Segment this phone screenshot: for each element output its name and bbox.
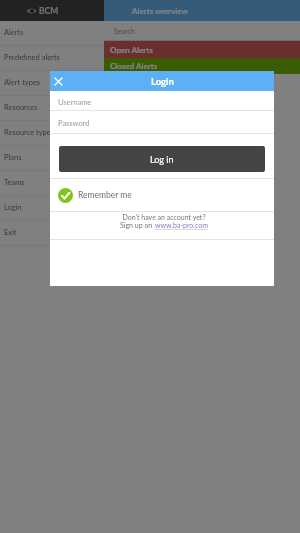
staticText: Resource types — [4, 128, 55, 137]
staticText: Plans — [4, 153, 22, 162]
staticText: Search — [114, 27, 135, 35]
button[interactable]: Exit — [0, 221, 104, 246]
button[interactable]: Resources — [0, 96, 104, 121]
button[interactable]: Login — [0, 196, 104, 221]
button[interactable]: Remember me — [50, 179, 274, 211]
button[interactable]: Open Alerts — [104, 41, 300, 58]
staticText: Alerts — [4, 28, 24, 37]
button[interactable]: Plans — [0, 146, 104, 171]
button[interactable]: Alert types — [0, 71, 104, 96]
staticText: Log in — [150, 154, 174, 165]
button[interactable]: Alerts — [0, 21, 104, 46]
button[interactable]: Resource types — [0, 121, 104, 146]
staticText: Alerts overview — [132, 6, 188, 16]
button[interactable]: Password — [58, 114, 274, 133]
staticText: Don't have an account yet? — [122, 213, 206, 221]
staticText: Remember me — [78, 190, 132, 200]
staticText: Username — [58, 98, 92, 107]
button[interactable]: www.ba-pro.com — [155, 221, 208, 229]
staticText: Sign up on — [120, 221, 155, 229]
staticText: Password — [58, 119, 90, 128]
staticText: Resources — [4, 103, 38, 112]
button[interactable]: Predefined alerts — [0, 46, 104, 71]
button[interactable]: Teams — [0, 171, 104, 196]
button[interactable]: Closed Alerts — [104, 58, 300, 74]
button[interactable]: Close — [50, 71, 66, 91]
staticText: Login — [151, 76, 174, 87]
staticText: Closed Alerts — [110, 61, 158, 71]
staticText: Alert types — [4, 78, 41, 87]
staticText: Teams — [4, 178, 25, 187]
button[interactable]: Log in — [59, 146, 265, 172]
staticText: Exit — [4, 228, 17, 237]
staticText: Predefined alerts — [4, 53, 60, 62]
staticText: Open Alerts — [110, 45, 153, 55]
staticText: Login — [4, 203, 22, 212]
button[interactable]: Username — [58, 94, 274, 110]
button[interactable]: Search — [104, 21, 300, 41]
staticText: BCM — [39, 6, 59, 16]
